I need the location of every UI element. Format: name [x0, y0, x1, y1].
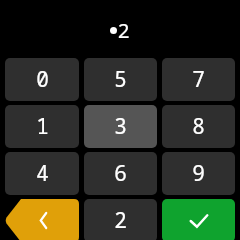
- staticText: 7: [192, 65, 205, 94]
- button[interactable]: 3: [84, 105, 157, 148]
- staticText: 2: [114, 206, 127, 235]
- button[interactable]: 5: [84, 58, 157, 101]
- button[interactable]: Confirm: [162, 199, 235, 240]
- button[interactable]: 4: [5, 152, 79, 195]
- button[interactable]: Delete: [5, 199, 79, 240]
- staticText: 5: [114, 65, 127, 94]
- staticText: 0: [36, 65, 49, 94]
- button[interactable]: 1: [5, 105, 79, 148]
- staticText: 1: [36, 112, 49, 141]
- button[interactable]: 7: [162, 58, 235, 101]
- button[interactable]: 2: [84, 199, 157, 240]
- staticText: 4: [36, 159, 49, 188]
- staticText: 3: [114, 112, 127, 141]
- button[interactable]: 0: [5, 58, 79, 101]
- button[interactable]: 6: [84, 152, 157, 195]
- button[interactable]: 8: [162, 105, 235, 148]
- button[interactable]: 9: [162, 152, 235, 195]
- staticText: 8: [192, 112, 205, 141]
- staticText: 6: [114, 159, 127, 188]
- staticText: 9: [192, 159, 205, 188]
- staticText: 2: [118, 17, 130, 44]
